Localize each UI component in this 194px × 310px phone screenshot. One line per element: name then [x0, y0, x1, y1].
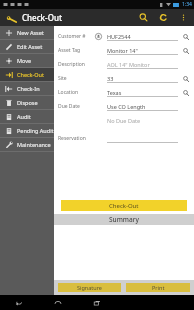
staticText: Check-In — [17, 85, 40, 92]
button[interactable]: Search — [181, 74, 190, 83]
button[interactable]: Check-In — [0, 82, 54, 96]
button[interactable]: Print — [126, 283, 190, 292]
staticText: Texas — [107, 89, 122, 96]
button[interactable]: Search — [137, 11, 150, 24]
staticText: Monitor 14" — [107, 47, 138, 54]
staticText: Pending Audit — [17, 127, 54, 134]
staticText: Site — [58, 75, 67, 82]
button[interactable]: Site — [54, 71, 194, 85]
button[interactable]: Search — [181, 88, 190, 97]
button[interactable]: Home — [38, 295, 77, 310]
button[interactable]: Maintenance — [0, 138, 54, 152]
button[interactable]: Search — [181, 46, 190, 55]
staticText: Use CO Length — [107, 103, 146, 110]
staticText: Check-Out — [17, 71, 45, 78]
button[interactable]: Recent apps — [77, 295, 116, 310]
staticText: Signature — [77, 284, 102, 291]
button[interactable]: Signature — [58, 283, 121, 292]
staticText: Reservation — [58, 135, 86, 142]
staticText: No Due Date — [107, 117, 141, 124]
staticText: Dispose — [17, 99, 38, 106]
other: Customer picker — [94, 32, 102, 40]
staticText: New Asset — [17, 29, 44, 36]
staticText: AOL 14" Monitor — [107, 61, 150, 68]
button[interactable]: Move — [0, 54, 54, 68]
button[interactable]: App icon — [4, 11, 18, 25]
button[interactable]: No Due Date — [54, 113, 194, 127]
staticText: HUF2544 — [107, 33, 131, 40]
button[interactable]: Search — [181, 32, 190, 41]
staticText: Check-Out — [109, 202, 139, 210]
staticText: Print — [152, 284, 165, 291]
button[interactable]: Asset Tag — [54, 43, 194, 57]
staticText: Due Date — [58, 103, 80, 110]
staticText: Location — [58, 89, 79, 96]
staticText: 33 — [107, 75, 114, 82]
button[interactable]: Edit Asset — [0, 40, 54, 54]
button[interactable]: Refresh — [157, 11, 170, 24]
staticText: Maintenance — [17, 141, 51, 148]
staticText: Asset Tag — [58, 47, 81, 54]
button[interactable]: New Asset — [0, 26, 54, 40]
staticText: Move — [17, 57, 32, 64]
button[interactable]: Due Date — [54, 99, 194, 113]
staticText: Audit — [17, 113, 31, 120]
button[interactable]: Audit — [0, 110, 54, 124]
staticText: Customer # — [58, 33, 86, 40]
button[interactable]: Description — [54, 57, 194, 71]
button[interactable]: Check-Out — [0, 68, 54, 82]
button[interactable]: Dispose — [0, 96, 54, 110]
staticText: Description — [58, 61, 85, 68]
button[interactable]: Check-Out — [61, 200, 187, 211]
button[interactable]: Pending Audit — [0, 124, 54, 138]
button[interactable]: More options — [177, 11, 190, 24]
staticText: Edit Asset — [17, 43, 43, 50]
button[interactable]: Customer # — [54, 29, 194, 43]
staticText: Summary — [109, 215, 139, 224]
staticText: Check-Out — [22, 12, 63, 23]
button[interactable]: Back — [0, 295, 38, 310]
staticText: 1:34 — [182, 1, 192, 8]
button[interactable]: Location — [54, 85, 194, 99]
button[interactable]: Reservation — [54, 131, 194, 145]
